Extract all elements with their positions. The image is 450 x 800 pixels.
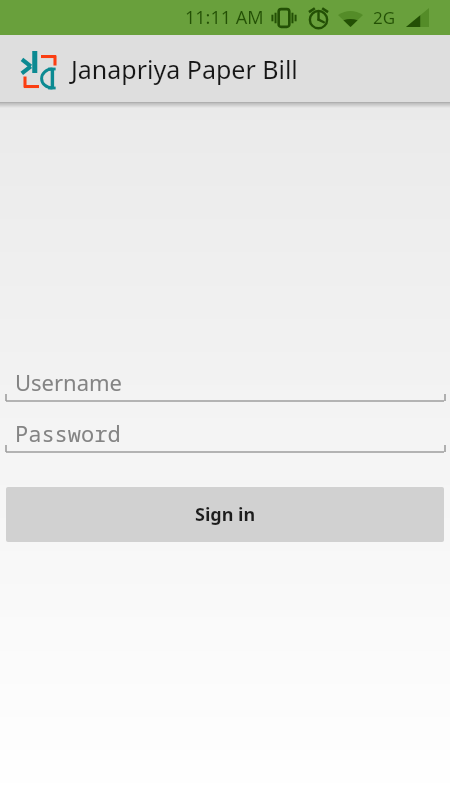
button[interactable]: Username bbox=[0, 360, 450, 411]
staticText: Password bbox=[15, 418, 121, 448]
staticText: Janapriya Paper Bill bbox=[71, 52, 298, 86]
button[interactable]: Sign in bbox=[6, 487, 444, 542]
staticText: 11:11 AM bbox=[185, 5, 264, 30]
staticText: 2G bbox=[373, 6, 396, 29]
staticText: Username bbox=[15, 367, 123, 397]
button[interactable]: Password bbox=[0, 411, 450, 462]
staticText: Sign in bbox=[195, 502, 256, 527]
